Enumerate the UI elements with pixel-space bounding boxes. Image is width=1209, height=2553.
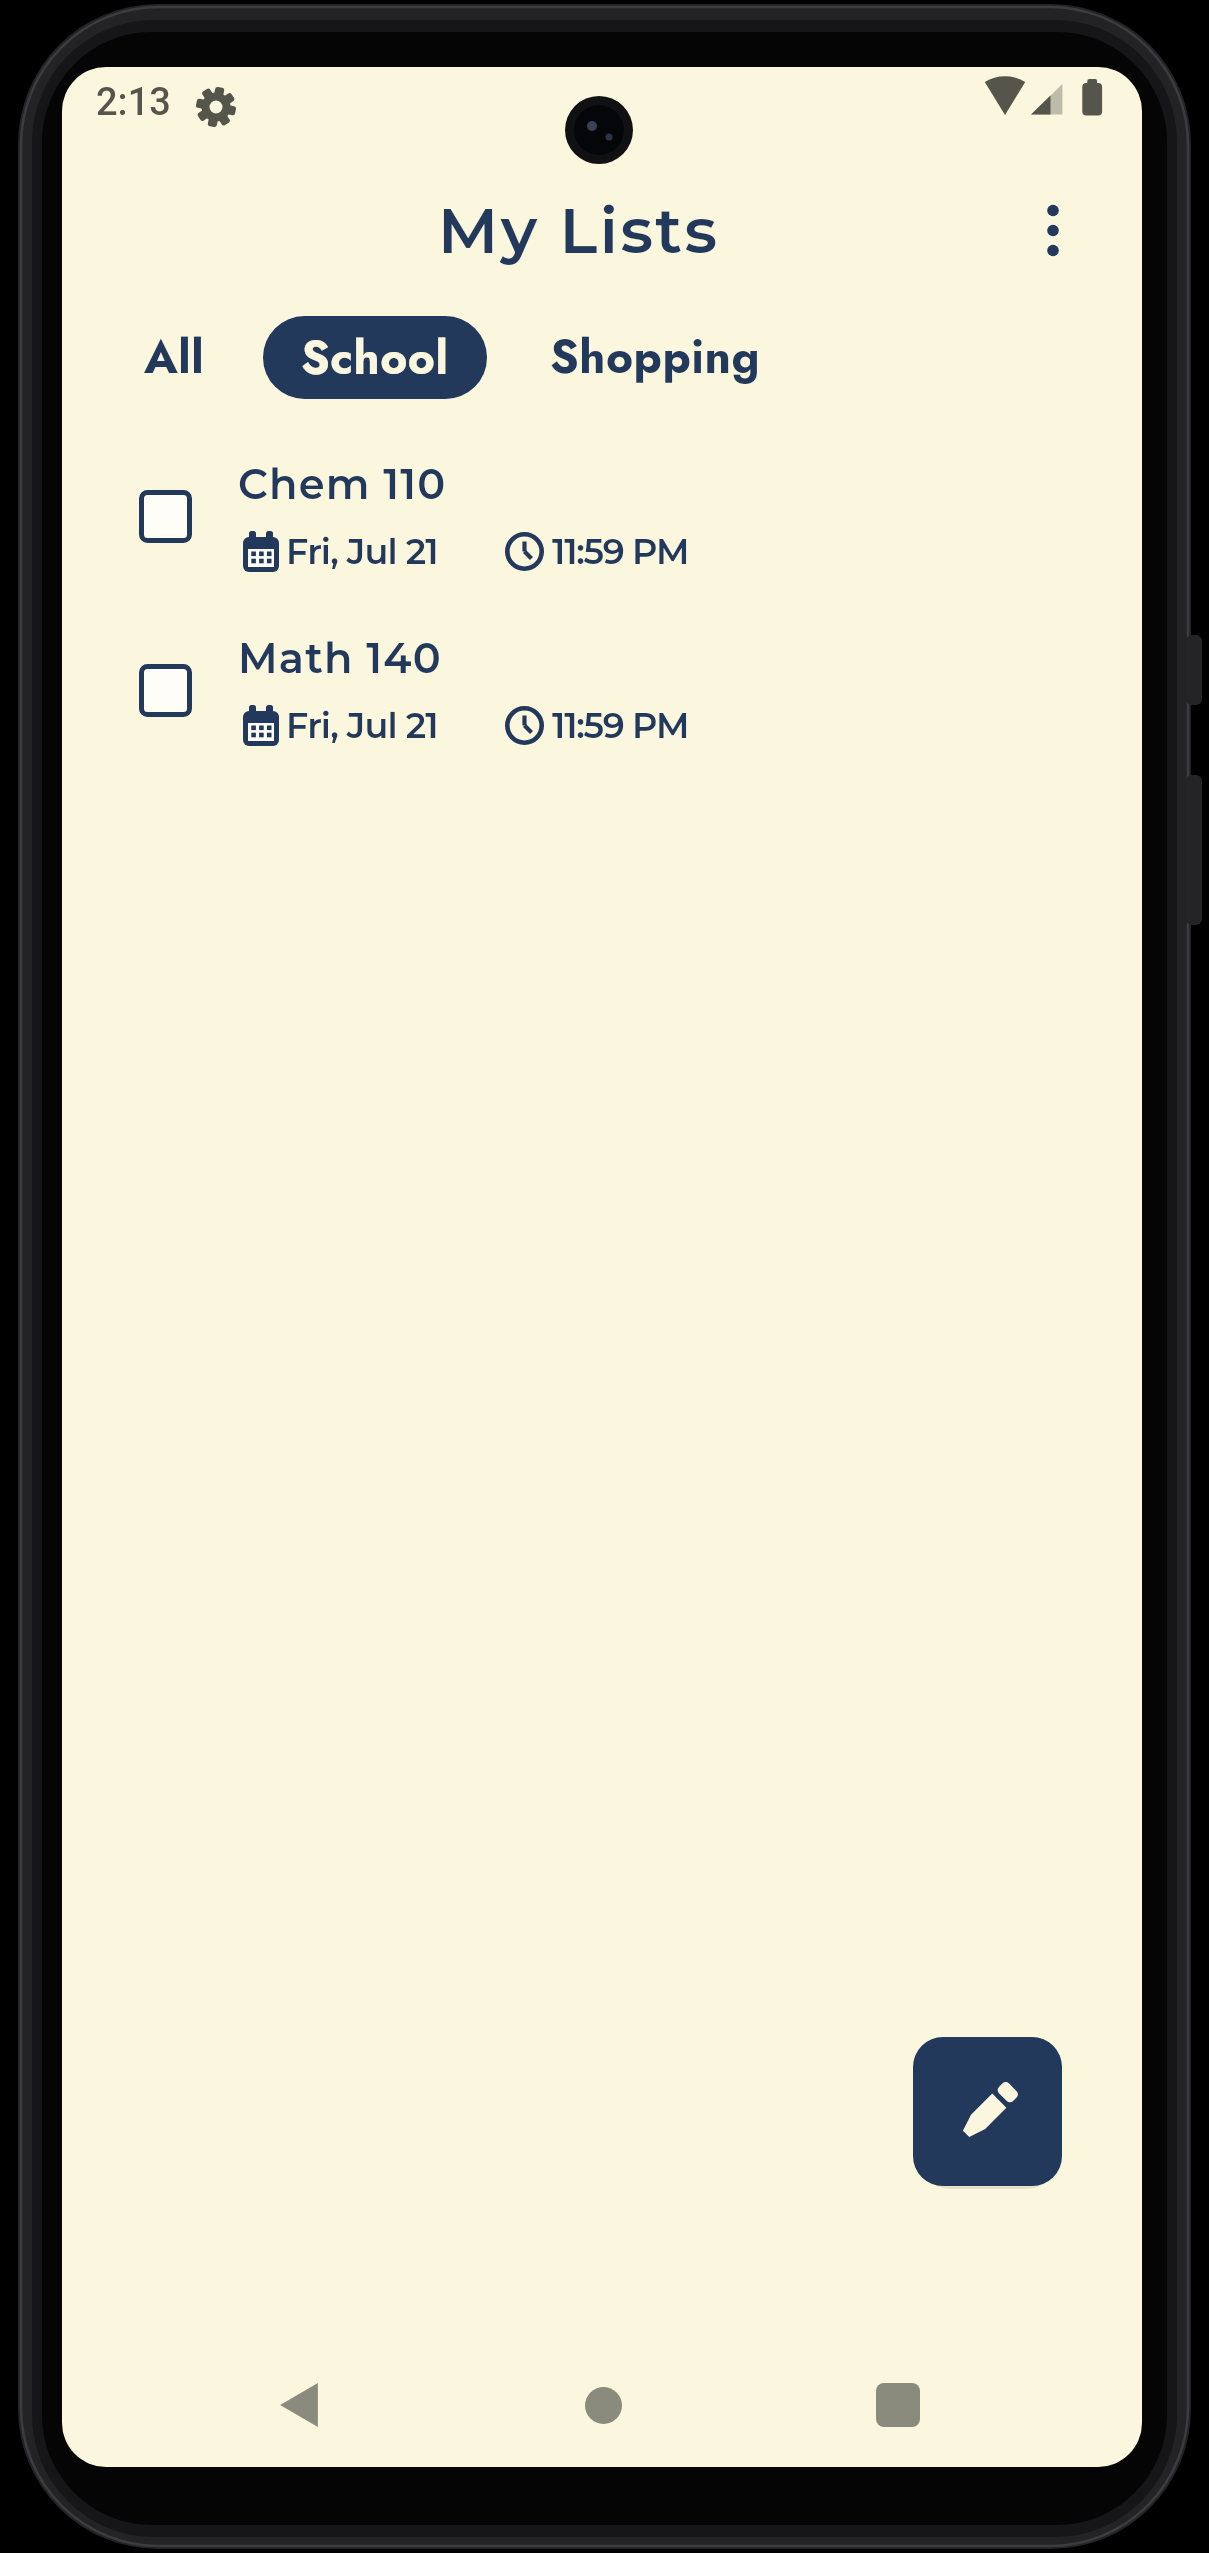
- staticText: 2:13: [96, 80, 171, 125]
- staticText: Fri, Jul 21: [286, 530, 438, 573]
- button[interactable]: [581, 2383, 625, 2427]
- staticText: All: [144, 324, 205, 390]
- staticText: My Lists: [438, 192, 720, 269]
- staticText: School: [301, 325, 449, 391]
- button[interactable]: [876, 2383, 920, 2427]
- staticText: Shopping: [550, 324, 761, 390]
- staticText: 11:59 PM: [552, 530, 689, 573]
- staticText: Math 140: [238, 633, 442, 684]
- button[interactable]: [278, 2383, 320, 2427]
- button[interactable]: [126, 477, 204, 555]
- button[interactable]: Shopping: [515, 315, 795, 399]
- staticText: 11:59 PM: [552, 704, 689, 747]
- button[interactable]: School: [263, 316, 487, 399]
- button[interactable]: [126, 651, 204, 729]
- button[interactable]: [913, 2037, 1062, 2186]
- staticText: Fri, Jul 21: [286, 704, 438, 747]
- staticText: Chem 110: [238, 459, 447, 510]
- button[interactable]: Chem 110: [238, 453, 718, 515]
- button[interactable]: Math 140: [238, 627, 718, 689]
- button[interactable]: [1017, 193, 1089, 279]
- button[interactable]: All: [124, 315, 224, 399]
